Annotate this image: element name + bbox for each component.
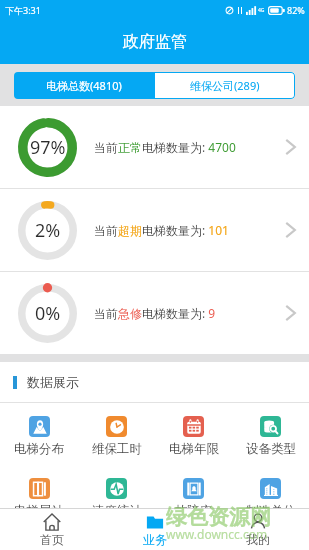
button[interactable]: 故障率 [155,465,232,527]
button[interactable]: 我的 [206,509,309,550]
staticText: 首页 [40,532,64,547]
staticText: 82% [287,4,305,16]
staticText: www.downcc.com [166,526,268,542]
staticText: 维保工时 [92,441,142,457]
staticText: 速度统计 [92,503,142,519]
button[interactable]: 电梯总数(4810) [14,72,154,99]
staticText: 当前超期电梯数量为: 101 [94,222,229,238]
staticText: 制造单位 [246,503,296,519]
staticText: 绿色资源网 [166,504,271,530]
staticText: 下午3:31 [5,4,41,16]
button[interactable]: 首页 [0,509,103,550]
staticText: 电梯年限 [169,441,219,457]
staticText: 当前正常电梯数量为: 4700 [94,139,236,155]
button[interactable]: 速度统计 [78,465,155,527]
button[interactable]: 设备类型 [232,403,309,465]
button[interactable]: 维保工时 [78,403,155,465]
button[interactable]: 电梯层站 [0,465,78,527]
staticText: 0% [35,301,61,326]
staticText: 97% [30,135,66,160]
button[interactable]: 维保公司(289) [154,72,295,99]
staticText: 电梯层站 [14,503,64,519]
button[interactable]: 97% [0,106,309,188]
staticText: 2% [35,218,61,243]
staticText: 电梯总数(4810) [46,78,122,93]
button[interactable]: 业务 [103,509,206,550]
button[interactable]: 电梯年限 [155,403,232,465]
button[interactable]: 电梯分布 [0,403,78,465]
staticText: 我的 [246,532,270,547]
staticText: 当前急修电梯数量为: 9 [94,305,216,321]
staticText: 政府监管 [123,32,187,52]
button[interactable]: 0% [0,272,309,354]
staticText: 设备类型 [246,441,296,457]
staticText: 4G [258,7,265,14]
button[interactable]: 制造单位 [232,465,309,527]
staticText: 电梯分布 [14,441,64,457]
staticText: 维保公司(289) [190,78,260,93]
staticText: 数据展示 [27,374,79,390]
button[interactable]: 2% [0,189,309,271]
staticText: 业务 [143,532,167,547]
staticText: 故障率 [175,503,213,519]
